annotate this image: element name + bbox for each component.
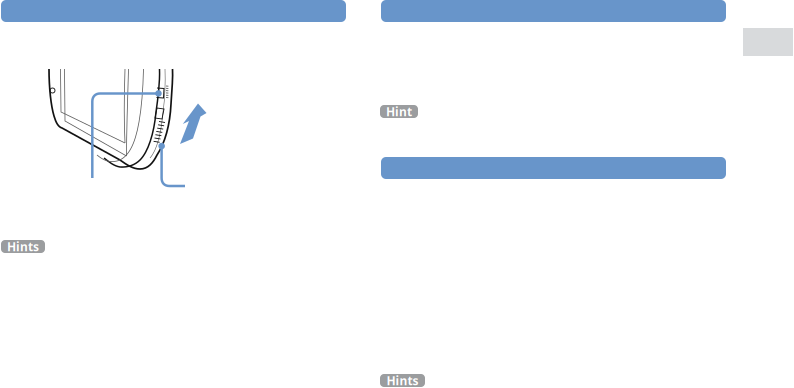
button[interactable]: Hints xyxy=(380,374,425,387)
button[interactable]: Hints xyxy=(1,240,45,253)
staticText: Hints xyxy=(7,238,39,254)
staticText: Hints xyxy=(386,372,418,388)
staticText: Hint xyxy=(386,103,412,119)
button[interactable]: Hint xyxy=(380,105,418,118)
